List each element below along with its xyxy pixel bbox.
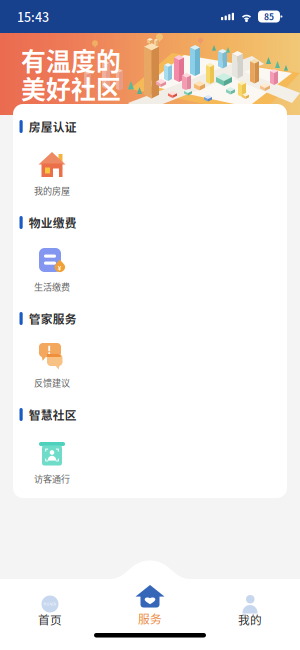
staticText: 首页: [38, 611, 62, 628]
staticText: 服务: [138, 610, 162, 627]
staticText: 15:43: [17, 7, 49, 25]
staticText: 美好社区: [21, 70, 121, 106]
staticText: 房屋认证: [29, 118, 77, 135]
staticText: 生活缴费: [34, 280, 70, 293]
button[interactable]: 我的: [213, 592, 287, 640]
staticText: 反馈建议: [34, 376, 70, 389]
button[interactable]: ¥: [24, 247, 80, 291]
button[interactable]: 访客通行: [24, 439, 80, 483]
staticText: 智慧社区: [29, 406, 77, 423]
button[interactable]: HUACN: [13, 592, 87, 640]
staticText: HUACN: [43, 601, 56, 607]
staticText: 我的房屋: [34, 184, 70, 197]
button[interactable]: 反馈建议: [24, 343, 80, 387]
staticText: 物业缴费: [29, 214, 77, 231]
staticText: 我的: [238, 611, 262, 628]
button[interactable]: 我的房屋: [24, 151, 80, 195]
staticText: ¥: [58, 263, 62, 272]
staticText: 管家服务: [29, 310, 77, 327]
button[interactable]: 服务: [113, 585, 187, 641]
staticText: 85: [264, 10, 274, 23]
staticText: 访客通行: [34, 472, 70, 485]
staticText: 有温度的: [21, 42, 121, 78]
